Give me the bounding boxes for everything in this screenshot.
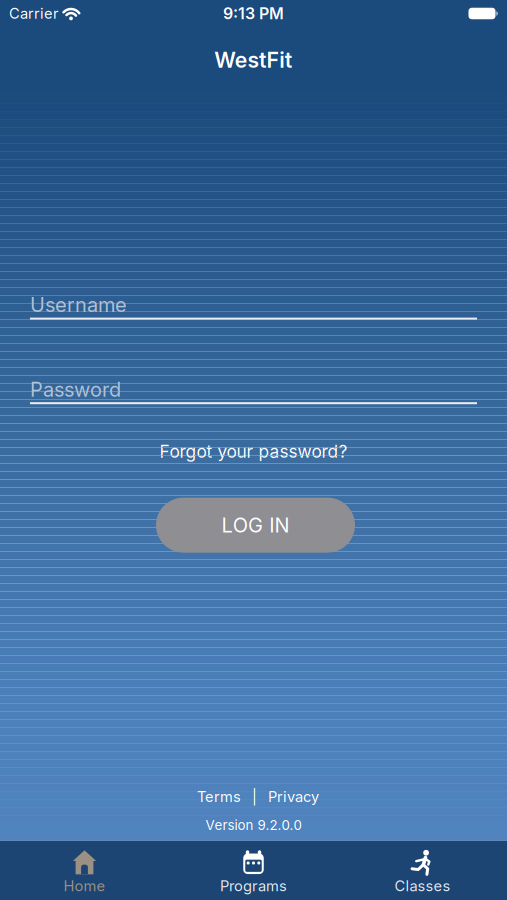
staticText: Privacy: [268, 788, 319, 805]
button[interactable]: Programs: [169, 840, 338, 900]
staticText: Username: [30, 293, 127, 317]
button[interactable]: Classes: [338, 840, 507, 900]
staticText: Carrier: [9, 5, 59, 22]
button[interactable]: Terms: [197, 788, 241, 805]
button[interactable]: Forgot your password?: [159, 441, 347, 462]
staticText: Home: [63, 877, 105, 895]
staticText: Forgot your password?: [159, 441, 347, 462]
staticText: Version 9.2.0.0: [205, 817, 301, 833]
staticText: LOG IN: [221, 513, 289, 537]
button[interactable]: Privacy: [268, 788, 319, 805]
staticText: Terms: [197, 788, 241, 805]
staticText: Password: [30, 378, 121, 401]
button[interactable]: Password: [30, 378, 477, 404]
button[interactable]: LOG IN: [156, 498, 355, 553]
button[interactable]: Username: [30, 293, 477, 320]
staticText: 9:13 PM: [223, 4, 284, 23]
staticText: |: [252, 788, 257, 805]
staticText: Classes: [394, 877, 450, 895]
staticText: WestFit: [214, 47, 293, 73]
staticText: Programs: [220, 877, 287, 895]
button[interactable]: Home: [0, 840, 169, 900]
